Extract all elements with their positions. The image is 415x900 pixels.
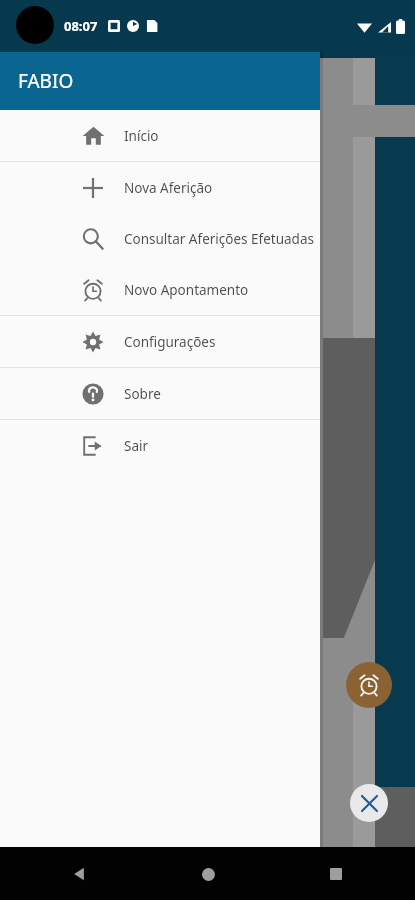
button[interactable]: Configurações (0, 316, 320, 367)
button[interactable]: New appointment (346, 662, 392, 708)
button[interactable]: Início (0, 110, 320, 161)
staticText: FABIO (18, 68, 74, 94)
staticText: Sobre (124, 385, 161, 403)
button[interactable]: Novo Apontamento (0, 264, 320, 315)
button[interactable]: Close (350, 784, 388, 822)
button[interactable]: Recent apps (319, 857, 353, 891)
button[interactable]: FABIO (0, 52, 320, 110)
button[interactable]: Home (191, 857, 225, 891)
button[interactable]: Back (62, 857, 96, 891)
button[interactable]: Sobre (0, 368, 320, 419)
staticText: 08:07 (64, 17, 98, 35)
button[interactable]: Consultar Aferições Efetuadas (0, 213, 320, 264)
button[interactable]: Nova Aferição (0, 162, 320, 213)
staticText: Sair (124, 437, 149, 455)
staticText: Nova Aferição (124, 179, 213, 197)
staticText: Início (124, 127, 159, 145)
staticText: Novo Apontamento (124, 281, 249, 299)
button[interactable]: Sair (0, 420, 320, 471)
staticText: Configurações (124, 333, 216, 351)
staticText: Consultar Aferições Efetuadas (124, 230, 314, 248)
